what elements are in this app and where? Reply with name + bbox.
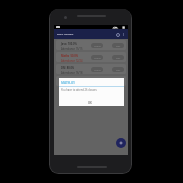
button[interactable]: MISS [112, 55, 124, 60]
button[interactable]: MISS [112, 67, 124, 72]
button[interactable]: ATTEND [91, 67, 103, 72]
staticText: MISS [116, 69, 121, 71]
staticText: DM 88.0% [61, 66, 75, 70]
staticText: Attendance 12/24 [61, 59, 83, 62]
button[interactable]: MISS [112, 43, 124, 48]
button[interactable]: Java 100.0% [56, 40, 126, 50]
button[interactable]: OS 92.0% [56, 76, 126, 86]
staticText: MISS [116, 57, 121, 59]
button[interactable]: Add [116, 138, 126, 148]
staticText: Attendance 23/25 [61, 83, 83, 86]
staticText: You have to attend 26 classes [61, 88, 97, 92]
button[interactable]: Refresh [115, 32, 120, 37]
button[interactable]: More options [121, 32, 125, 36]
button[interactable]: OK [83, 100, 97, 105]
staticText: Batch Manager [57, 33, 74, 36]
button[interactable]: DM 88.0% [56, 64, 126, 74]
staticText: ATTEND [94, 69, 101, 71]
staticText: OK [88, 101, 92, 105]
staticText: ATTEND [94, 45, 101, 47]
button[interactable]: Maths 50.0% [56, 52, 126, 62]
staticText: MISS [116, 45, 121, 47]
button[interactable]: ATTEND [91, 55, 103, 60]
staticText: OS 92.0% [61, 78, 74, 82]
staticText: Attendance 16/18 [61, 71, 83, 74]
staticText: Maths 50.0% [61, 54, 78, 58]
staticText: Java 100.0% [61, 42, 77, 46]
staticText: Attendance 15/15 [61, 47, 83, 50]
staticText: ATTEND [94, 57, 101, 59]
button[interactable]: ATTEND [91, 43, 103, 48]
staticText: MATH-01 [61, 81, 75, 85]
